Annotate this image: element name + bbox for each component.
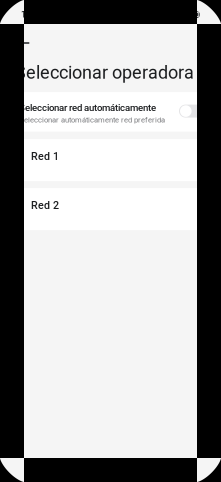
button[interactable]: Red 1 [7,139,214,181]
staticText: Seleccionar red automáticamente [19,102,156,113]
staticText: Red 2 [31,199,59,212]
staticText: 10:00 [21,9,43,20]
button[interactable]: Red 2 [7,188,214,230]
staticText: Seleccionar automáticamente red preferid… [19,115,165,124]
button[interactable]: Seleccionar red automáticamente [7,92,214,132]
button[interactable]: Back [0,30,36,54]
staticText: Seleccionar operadora [15,62,194,83]
staticText: Red 1 [31,150,59,163]
staticText: 100 [188,11,200,18]
